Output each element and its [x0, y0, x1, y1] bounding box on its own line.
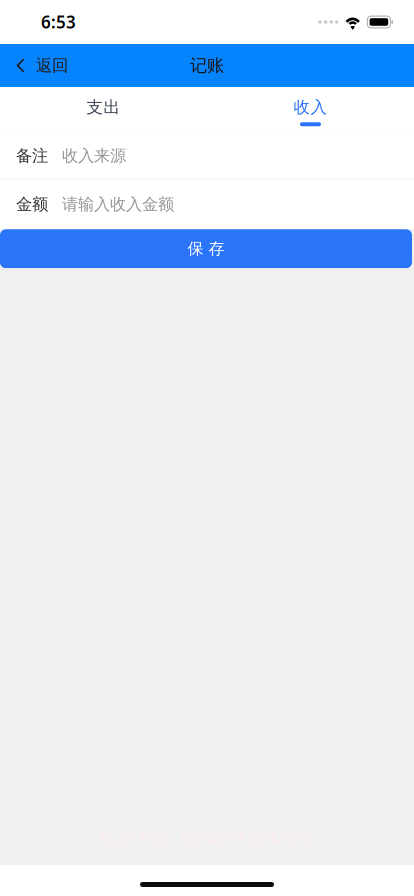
- staticText: 收入来源: [62, 146, 126, 166]
- button[interactable]: 保 存: [0, 229, 412, 268]
- staticText: 6:53: [41, 11, 76, 33]
- staticText: 记账: [190, 55, 224, 76]
- staticText: 支出: [86, 97, 120, 117]
- button[interactable]: 备注: [0, 133, 414, 178]
- staticText: 收入: [293, 97, 327, 117]
- button[interactable]: 返回: [0, 44, 82, 87]
- staticText: 保 存: [187, 239, 224, 259]
- button[interactable]: 金额: [0, 179, 414, 229]
- staticText: 金额: [16, 194, 48, 214]
- staticText: 返回: [36, 55, 68, 75]
- staticText: 玩意卡盟 · NBWXH.COM.CN: [100, 826, 314, 849]
- staticText: 备注: [16, 146, 48, 166]
- staticText: 请输入收入金额: [62, 194, 174, 214]
- button[interactable]: 支出: [0, 87, 207, 133]
- button[interactable]: 收入: [207, 87, 414, 133]
